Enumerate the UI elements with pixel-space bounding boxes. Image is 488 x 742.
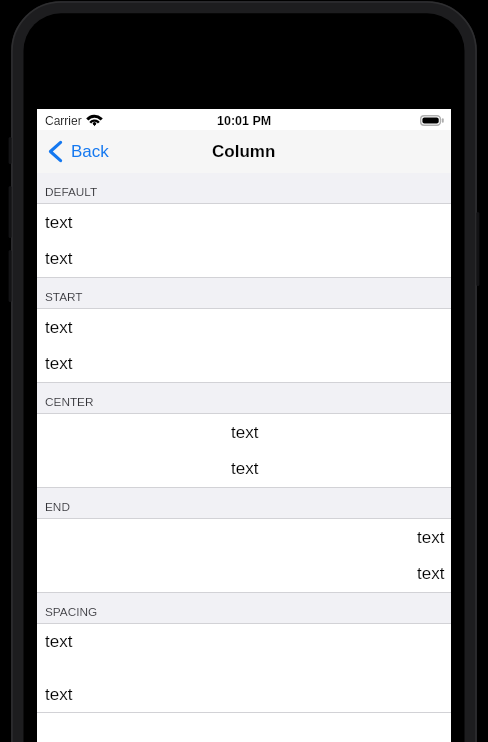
staticText: END	[45, 500, 70, 513]
staticText: 10:01 PM	[217, 114, 272, 128]
staticText: START	[45, 290, 83, 303]
button[interactable]: text	[37, 204, 451, 277]
staticText: Back	[71, 142, 109, 161]
other: Battery full	[420, 115, 444, 126]
staticText: Carrier	[45, 114, 82, 127]
button[interactable]: Back	[45, 135, 113, 168]
staticText: text	[417, 528, 445, 547]
other: Wi-Fi signal	[87, 114, 102, 126]
staticText: text	[45, 685, 73, 704]
staticText: text	[45, 249, 73, 268]
staticText: DEFAULT	[45, 185, 98, 198]
button[interactable]: text	[37, 309, 451, 382]
staticText: SPACING	[45, 605, 98, 618]
staticText: text	[231, 459, 259, 478]
button[interactable]: text	[37, 519, 451, 592]
staticText: CENTER	[45, 395, 94, 408]
staticText: text	[45, 354, 73, 373]
button[interactable]: text	[37, 624, 451, 712]
staticText: text	[417, 564, 445, 583]
staticText: text	[45, 632, 73, 651]
staticText: text	[45, 213, 73, 232]
staticText: Column	[212, 142, 276, 161]
button[interactable]: text	[37, 414, 451, 487]
staticText: text	[231, 423, 259, 442]
staticText: text	[45, 318, 73, 337]
